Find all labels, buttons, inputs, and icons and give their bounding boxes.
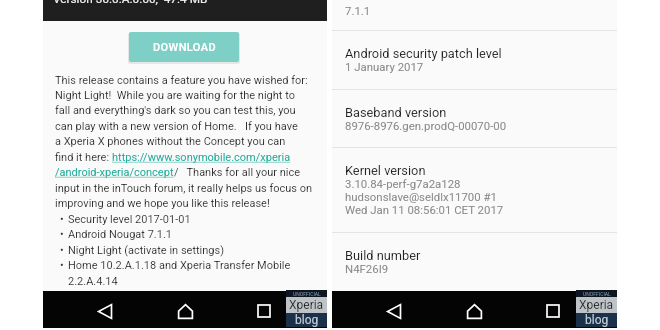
staticText: can play with a new version of Home. If … — [55, 120, 298, 133]
staticText: Build number — [345, 248, 421, 263]
staticText: 2.2.A.4.14 — [68, 275, 118, 288]
staticText: 1 January 2017 — [345, 60, 424, 73]
staticText: Xperia — [579, 298, 614, 312]
button[interactable]: Back — [94, 300, 116, 322]
staticText: 3.10.84-perf-g7a2a128 — [345, 177, 461, 190]
staticText: • — [60, 213, 64, 226]
staticText: Home 10.2.A.1.18 and Xperia Transfer Mob… — [68, 259, 291, 272]
staticText: 8976-8976.gen.prodQ-00070-00 — [345, 119, 507, 132]
staticText: Android security patch level — [345, 46, 502, 61]
button[interactable]: Recent apps — [253, 300, 275, 322]
staticText: blog — [585, 313, 609, 327]
staticText: This release contains a feature you have… — [55, 74, 308, 87]
button[interactable]: Android security patch level — [332, 31, 617, 89]
staticText: / Thanks for all your nice — [174, 166, 301, 179]
staticText: fall and everything's dark so you can te… — [55, 104, 296, 117]
staticText: Xperia — [289, 298, 324, 312]
staticText: find it here: — [55, 151, 112, 164]
button[interactable]: Back — [383, 300, 405, 322]
staticText: Night Light (activate in settings) — [68, 244, 225, 257]
staticText: Security level 2017-01-01 — [68, 213, 191, 226]
staticText: Wed Jan 11 08:56:01 CET 2017 — [345, 203, 504, 216]
staticText: hudsonslave@seldlx11700 #1 — [345, 190, 497, 203]
staticText: N4F26I9 — [345, 262, 389, 275]
staticText: input in the inTouch forum, it really he… — [55, 182, 313, 195]
button[interactable]: Home — [174, 300, 196, 322]
staticText: Version 36.0.A.0.60, 47.4 MB — [53, 0, 208, 6]
button[interactable]: DOWNLOAD — [129, 32, 239, 62]
staticText: a Xperia X phones without the Concept yo… — [55, 135, 286, 148]
staticText: Night Light! While you are waiting for t… — [55, 89, 295, 102]
staticText: improving and we hope you like this rele… — [55, 197, 270, 210]
button[interactable]: Baseband version — [332, 90, 617, 147]
staticText: Android Nougat 7.1.1 — [68, 228, 172, 241]
staticText: • — [60, 259, 64, 272]
staticText: DOWNLOAD — [153, 41, 216, 54]
button[interactable]: https://www.sonymobile.com/xperia — [112, 151, 291, 164]
button[interactable]: Build number — [332, 233, 617, 292]
button[interactable]: Recent apps — [542, 300, 564, 322]
staticText: UNOFFICIAL — [583, 291, 611, 297]
staticText: UNOFFICIAL — [293, 291, 321, 297]
staticText: Baseband version — [345, 105, 447, 120]
button[interactable]: Kernel version — [332, 148, 617, 232]
button[interactable]: /android-xperia/concept — [55, 166, 174, 179]
staticText: Kernel version — [345, 163, 426, 178]
staticText: 7.1.1 — [345, 4, 371, 17]
button[interactable]: Home — [463, 300, 485, 322]
staticText: blog — [295, 313, 319, 327]
staticText: • — [60, 228, 64, 241]
staticText: • — [60, 244, 64, 257]
